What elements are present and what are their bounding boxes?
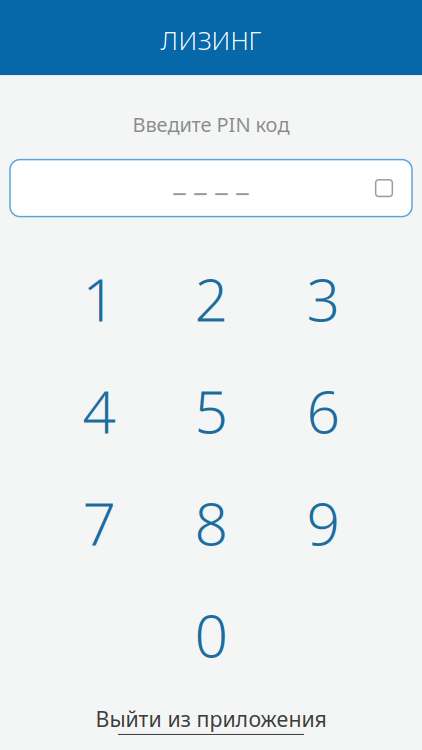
staticText: 7 bbox=[82, 484, 115, 562]
staticText: Выйти из приложения bbox=[95, 705, 326, 733]
button[interactable]: 7 bbox=[43, 467, 155, 579]
staticText: 8 bbox=[194, 484, 227, 562]
staticText: 0 bbox=[194, 596, 227, 674]
button[interactable]: 9 bbox=[267, 467, 379, 579]
staticText: 4 bbox=[82, 372, 115, 450]
button[interactable]: 6 bbox=[267, 355, 379, 467]
staticText: 1 bbox=[82, 260, 115, 338]
button[interactable]: 1 bbox=[43, 243, 155, 355]
staticText: 9 bbox=[306, 484, 339, 562]
button[interactable]: 5 bbox=[155, 355, 267, 467]
button[interactable]: Delete bbox=[362, 166, 406, 210]
staticText: 3 bbox=[306, 260, 339, 338]
button[interactable]: Выйти из приложения bbox=[75, 699, 346, 741]
staticText: Введите PIN код bbox=[132, 111, 289, 138]
button[interactable]: 3 bbox=[267, 243, 379, 355]
staticText: 6 bbox=[306, 372, 339, 450]
button[interactable]: 0 bbox=[155, 579, 267, 691]
button[interactable]: 4 bbox=[43, 355, 155, 467]
staticText: 5 bbox=[194, 372, 227, 450]
staticText: ЛИЗИНГ bbox=[160, 23, 261, 57]
staticText: 2 bbox=[194, 260, 227, 338]
button[interactable]: 2 bbox=[155, 243, 267, 355]
button[interactable]: 8 bbox=[155, 467, 267, 579]
